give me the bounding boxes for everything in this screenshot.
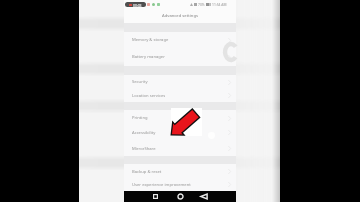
staticText: Memory & storage xyxy=(132,37,169,43)
button[interactable]: Backup & reset xyxy=(124,164,236,179)
button[interactable]: Back xyxy=(200,193,208,200)
staticText: Backup & reset xyxy=(132,169,162,175)
button[interactable]: Printing xyxy=(124,110,236,126)
staticText: 11:54 AM xyxy=(212,2,227,6)
staticText: Security xyxy=(132,79,148,85)
button[interactable]: User experience improvement xyxy=(124,180,236,189)
staticText: Battery manager xyxy=(132,54,165,60)
staticText: Advanced settings xyxy=(162,13,198,19)
button[interactable]: Location services xyxy=(124,89,236,102)
staticText: 00:03 xyxy=(133,3,142,7)
button[interactable]: Memory & storage xyxy=(124,32,236,48)
button[interactable]: Security xyxy=(124,75,236,89)
button[interactable]: MirrorShare xyxy=(124,141,236,156)
staticText: MirrorShare xyxy=(132,146,156,152)
button[interactable]: Accessibility xyxy=(124,125,236,140)
staticText: 70% xyxy=(198,2,205,6)
button[interactable]: Recents xyxy=(153,194,158,199)
staticText: Accessibility xyxy=(132,130,156,136)
staticText: Location services xyxy=(132,93,166,99)
button[interactable]: Battery manager xyxy=(124,48,236,66)
staticText: Printing xyxy=(132,115,148,121)
button[interactable]: Home xyxy=(177,193,184,200)
staticText: User experience improvement xyxy=(132,182,191,188)
